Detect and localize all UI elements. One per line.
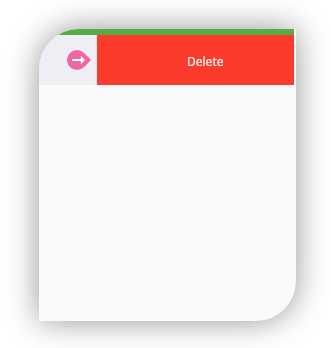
button[interactable]: Delete <box>97 35 294 85</box>
staticText: Delete <box>187 53 224 69</box>
button[interactable]: Archive <box>67 50 91 70</box>
